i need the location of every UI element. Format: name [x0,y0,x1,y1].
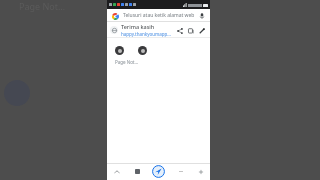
button[interactable]: More [174,165,187,178]
button[interactable]: Contact [138,46,147,55]
staticText: Page Not… [115,59,139,65]
staticText: Page Not… [19,0,66,12]
button[interactable]: Navigate [151,164,166,179]
button[interactable]: Share [174,25,185,36]
staticText: Terima kasih [121,23,155,30]
button[interactable]: Edit [196,25,207,36]
staticText: happy.thankyoumapp… [121,31,171,37]
button[interactable]: Contact [115,46,124,55]
button[interactable]: Copy [185,25,196,36]
button[interactable]: Telusuri atau ketik alamat web [123,12,195,19]
staticText: Telusuri atau ketik alamat web [123,12,195,19]
button[interactable]: Voice search [197,11,207,21]
button[interactable]: Terima kasih [121,23,173,37]
button[interactable]: Back [110,165,123,178]
button[interactable]: Add [194,165,207,178]
button[interactable]: Recents [131,165,144,178]
button[interactable]: Google search [110,11,120,21]
